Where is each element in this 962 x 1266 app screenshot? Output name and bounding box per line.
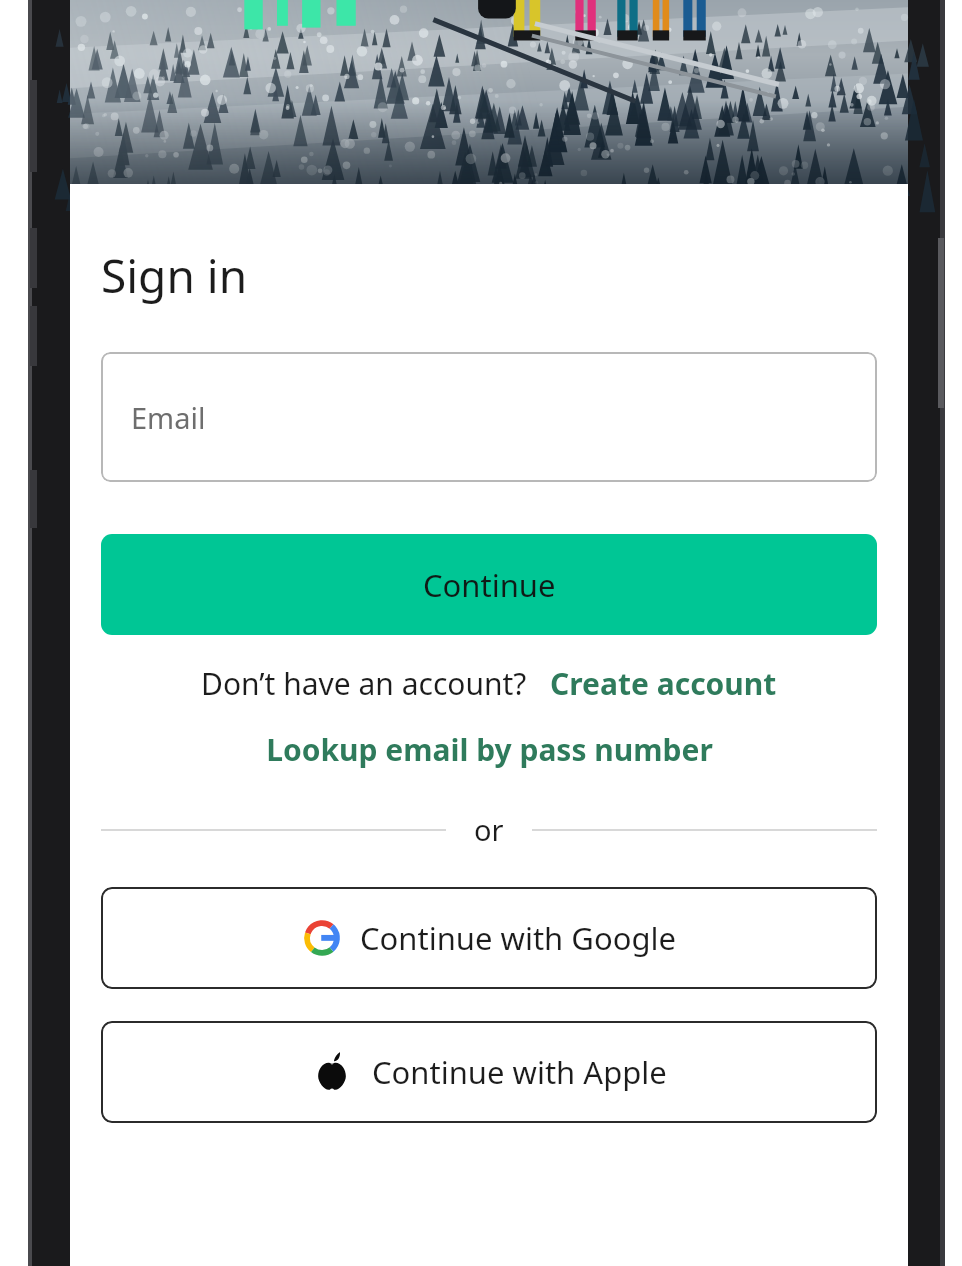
staticText: Lookup email by pass number — [266, 729, 713, 770]
staticText: Continue — [423, 564, 556, 606]
staticText: Continue with Apple — [372, 1051, 667, 1093]
button[interactable]: Lookup email by pass number — [266, 729, 713, 770]
button[interactable]: Create account — [550, 663, 777, 704]
button[interactable]: Continue with Google — [101, 887, 877, 989]
button[interactable]: Continue — [101, 534, 877, 635]
staticText: Don’t have an account? — [201, 663, 527, 704]
button[interactable]: Email — [101, 352, 877, 482]
button[interactable]: Continue with Apple — [101, 1021, 877, 1123]
staticText: Create account — [550, 663, 777, 704]
staticText: Continue with Google — [360, 917, 676, 959]
staticText: Email — [131, 398, 206, 437]
staticText: or — [474, 810, 504, 849]
staticText: Sign in — [101, 244, 248, 307]
